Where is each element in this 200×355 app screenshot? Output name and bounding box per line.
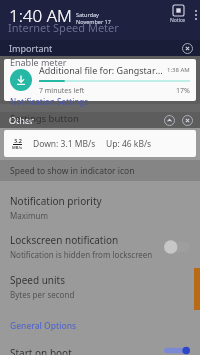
- button[interactable]: Collapse: [164, 115, 175, 126]
- staticText: Notice: [170, 17, 186, 24]
- staticText: Internet Speed Meter: [8, 20, 119, 35]
- button[interactable]: Lockscreen notification: [0, 233, 200, 260]
- staticText: 7 minutes left: [39, 86, 85, 96]
- staticText: 3.2: [14, 137, 22, 144]
- staticText: Maximum: [10, 210, 48, 221]
- staticText: Speed units: [10, 273, 66, 287]
- staticText: Lockscreen notification: [10, 233, 119, 247]
- button[interactable]: Speed to show in indicator icon: [0, 160, 200, 181]
- staticText: Notification is hidden from lockscreen: [10, 249, 153, 260]
- staticText: Notification priority: [10, 194, 102, 208]
- button[interactable]: Toggle: [164, 346, 190, 355]
- button[interactable]: Dismiss all: [182, 115, 193, 126]
- staticText: Bytes per second: [10, 289, 75, 300]
- button[interactable]: More options: [195, 10, 197, 20]
- staticText: Settings button: [10, 112, 79, 125]
- button[interactable]: Speed units: [0, 273, 200, 300]
- staticText: Other: [9, 114, 34, 126]
- button[interactable]: 3.2: [4, 130, 196, 157]
- button[interactable]: Dismiss all: [182, 43, 193, 54]
- staticText: Enable meter: [10, 56, 67, 68]
- staticText: Notification Settings: [10, 96, 89, 107]
- staticText: Saturday: [76, 11, 99, 18]
- button[interactable]: Notification priority: [0, 194, 200, 221]
- staticText: Speed to show in indicator icon: [10, 165, 135, 177]
- staticText: 1:38 AM: [167, 66, 190, 74]
- staticText: Down: 3.1 MB/s: [33, 138, 96, 150]
- button[interactable]: Start on boot: [0, 346, 200, 355]
- button[interactable]: Toggle: [164, 239, 190, 255]
- staticText: 1:40 AM: [9, 4, 72, 27]
- staticText: Important: [9, 42, 53, 54]
- staticText: November 17: [76, 18, 111, 25]
- staticText: Start on boot: [10, 346, 72, 355]
- staticText: Up: 46 kB/s: [106, 138, 152, 150]
- button[interactable]: Additional file for: Gangstar V..: [4, 59, 196, 101]
- button[interactable]: Notice: [170, 5, 186, 24]
- staticText: 17%: [176, 86, 190, 96]
- staticText: Additional file for: Gangstar V..: [39, 64, 163, 76]
- staticText: General Options: [10, 320, 77, 332]
- staticText: MB/s: [12, 145, 23, 150]
